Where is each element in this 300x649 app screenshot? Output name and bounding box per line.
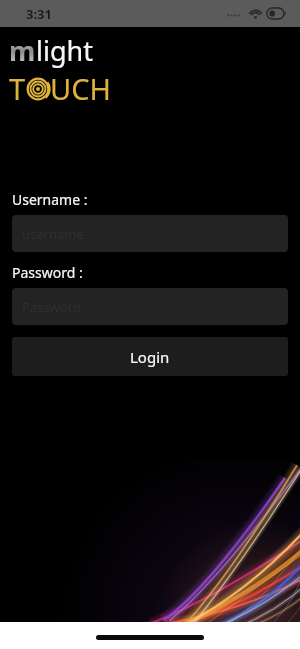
staticText: Password :: [12, 263, 83, 282]
staticText: 3:31: [26, 5, 52, 23]
button[interactable]: Login: [12, 337, 288, 376]
staticText: UCH: [50, 69, 112, 108]
staticText: T: [9, 69, 26, 108]
staticText: Username :: [12, 190, 88, 209]
staticText: Password: [22, 298, 81, 316]
staticText: light: [36, 32, 93, 69]
staticText: Login: [130, 347, 170, 367]
staticText: username: [22, 225, 84, 243]
staticText: m: [9, 32, 36, 69]
